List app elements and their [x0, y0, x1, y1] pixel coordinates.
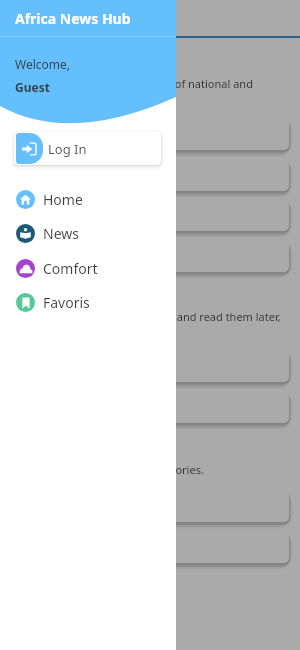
button[interactable] [11, 118, 289, 150]
button[interactable] [11, 350, 289, 382]
staticText: Browse all the news by categories. [27, 462, 204, 477]
staticText: Home [43, 190, 83, 209]
button[interactable] [11, 199, 289, 231]
button[interactable]: Home [16, 189, 176, 209]
staticText: Guest [15, 79, 50, 95]
staticText: Comfort [43, 259, 98, 278]
button[interactable]: Log In [14, 132, 161, 165]
staticText: Stay up to date with the latest of natio… [18, 76, 253, 91]
staticText: Favoris [43, 293, 90, 312]
button[interactable] [11, 240, 289, 272]
staticText: News [43, 224, 79, 243]
button[interactable]: Comfort [16, 258, 176, 278]
button[interactable]: News [16, 223, 176, 243]
button[interactable] [11, 531, 289, 563]
button[interactable] [11, 391, 289, 423]
staticText: Africa News Hub [15, 9, 131, 28]
button[interactable]: Favoris [16, 292, 176, 312]
staticText: Log In [48, 140, 87, 158]
button[interactable] [11, 159, 289, 191]
staticText: Welcome, [15, 56, 71, 72]
button[interactable] [11, 490, 289, 522]
staticText: Save your favourite articles and read th… [34, 309, 281, 324]
button[interactable]: Africa News Hub [0, 0, 176, 36]
